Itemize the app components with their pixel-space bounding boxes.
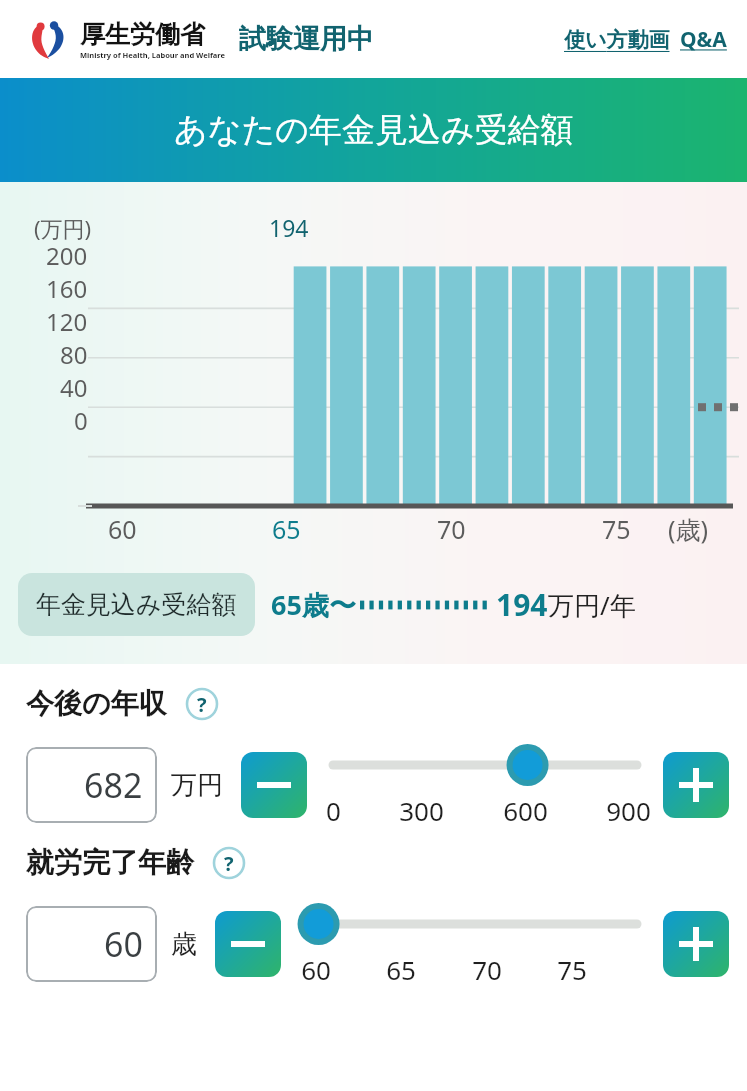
staticText: 就労完了年齢 xyxy=(26,845,194,880)
button[interactable]: Decrease 今後の年収 xyxy=(241,752,307,818)
staticText: 試験運用中 xyxy=(239,22,374,56)
staticText: 682 xyxy=(84,762,143,808)
staticText: 厚生労働省 xyxy=(80,19,205,50)
staticText: 万円/年 xyxy=(548,587,636,623)
staticText: (万円) xyxy=(34,213,92,243)
staticText: Ministry of Health, Labour and Welfare xyxy=(80,50,225,60)
staticText: (歳) xyxy=(668,512,709,546)
staticText: 70 xyxy=(437,512,466,546)
button[interactable]: Help xyxy=(185,687,219,721)
button[interactable]: Slider xyxy=(319,743,651,787)
button[interactable]: 年金見込み受給額 xyxy=(18,573,636,636)
staticText: 160 xyxy=(46,272,88,305)
staticText: 900 xyxy=(606,793,651,827)
staticText: 80 xyxy=(60,338,88,371)
button[interactable]: 682 xyxy=(26,747,157,823)
button[interactable]: Decrease 就労完了年齢 xyxy=(215,911,281,977)
staticText: 今後の年収 xyxy=(26,686,167,721)
button[interactable]: Increase 今後の年収 xyxy=(663,752,729,818)
staticText: 65 xyxy=(386,952,416,986)
staticText: 年金見込み受給額 xyxy=(36,589,237,620)
staticText: 200 xyxy=(46,239,88,272)
staticText: 300 xyxy=(399,793,444,827)
staticText: 0 xyxy=(326,793,341,827)
staticText: 194 xyxy=(269,212,309,243)
button[interactable]: Increase 就労完了年齢 xyxy=(663,911,729,977)
staticText: 70 xyxy=(472,952,502,986)
staticText: 120 xyxy=(46,305,88,338)
staticText: 40 xyxy=(60,371,88,404)
staticText: 歳 xyxy=(171,928,197,961)
staticText: ? xyxy=(224,850,234,877)
staticText: 使い方動画 xyxy=(564,27,670,53)
button[interactable]: Slider xyxy=(293,902,651,946)
staticText: 65 xyxy=(272,512,301,546)
staticText: ? xyxy=(197,691,207,718)
staticText: 60 xyxy=(108,512,137,546)
staticText: あなたの年金見込み受給額 xyxy=(174,109,574,151)
staticText: 60 xyxy=(104,921,143,967)
staticText: 75 xyxy=(557,952,587,986)
staticText: 75 xyxy=(602,512,631,546)
button[interactable]: Help xyxy=(212,846,246,880)
staticText: 600 xyxy=(503,793,548,827)
button[interactable]: 60 xyxy=(26,906,157,982)
staticText: Q&A xyxy=(680,25,727,54)
staticText: 194 xyxy=(496,584,548,625)
button[interactable]: Q&A xyxy=(680,25,727,54)
staticText: 60 xyxy=(301,952,331,986)
staticText: 65歳〜 xyxy=(271,586,356,623)
staticText: 0 xyxy=(74,404,88,437)
staticText: 万円 xyxy=(171,769,223,802)
button[interactable]: 使い方動画 xyxy=(564,27,670,53)
